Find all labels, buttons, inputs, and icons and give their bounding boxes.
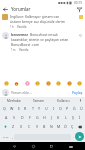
button[interactable]: Emoji 7: [66, 80, 72, 86]
button[interactable]: W: [8, 104, 15, 113]
button[interactable]: Switch keyboard: [67, 143, 74, 150]
button[interactable]: ?123: [1, 132, 10, 141]
staticText: 00:15: [74, 1, 83, 5]
staticText: R: [24, 106, 27, 111]
staticText: İ: [79, 115, 81, 120]
button[interactable]: Comma: [10, 132, 14, 141]
button[interactable]: M: [55, 122, 62, 131]
staticText: M: [57, 124, 61, 129]
staticText: U: [45, 106, 48, 111]
button[interactable]: Yorum ekle...: [11, 90, 71, 95]
button[interactable]: Ö: [62, 122, 69, 131]
staticText: Tamam: [33, 99, 45, 103]
button[interactable]: A: [2, 113, 10, 122]
button[interactable]: Q: [0, 104, 8, 113]
button[interactable]: Emoji 6: [55, 80, 61, 86]
button[interactable]: Like: [78, 33, 83, 38]
button[interactable]: Send: [75, 132, 84, 141]
button[interactable]: Back: [2, 6, 9, 13]
button[interactable]: Emoji 4: [34, 80, 40, 86]
button[interactable]: X: [17, 122, 25, 131]
staticText: O: [59, 106, 62, 111]
button[interactable]: G: [34, 113, 41, 122]
button[interactable]: Emoji 8: [76, 80, 82, 86]
button[interactable]: S: [10, 113, 18, 122]
button[interactable]: I: [50, 104, 57, 113]
button[interactable]: R: [22, 104, 29, 113]
button[interactable]: İ: [76, 113, 83, 122]
staticText: L: [65, 115, 67, 120]
button[interactable]: Period: [71, 132, 75, 141]
staticText: X: [20, 124, 23, 129]
staticText: Q: [3, 106, 6, 111]
button[interactable]: N: [48, 122, 55, 131]
staticText: ,: [12, 134, 13, 139]
button[interactable]: T: [29, 104, 36, 113]
staticText: Kullanıcı: [57, 99, 70, 103]
button[interactable]: benzemez: [0, 29, 85, 52]
button[interactable]: Ç: [69, 122, 76, 131]
staticText: Z: [12, 124, 15, 129]
staticText: benzemez: [11, 32, 29, 37]
staticText: T: [32, 106, 34, 111]
button[interactable]: H: [41, 113, 48, 122]
staticText: Merhaba: [7, 99, 21, 103]
staticText: Bonushoot ensuk: [30, 32, 58, 37]
button[interactable]: Ş: [69, 113, 76, 122]
button[interactable]: U: [43, 104, 50, 113]
staticText: Yanıtla: [19, 48, 29, 52]
staticText: 1h: [10, 25, 14, 29]
staticText: kazandılar, sitenin ve paylaşan ortan: [11, 37, 69, 42]
button[interactable]: K: [55, 113, 62, 122]
staticText: B: [43, 124, 46, 129]
button[interactable]: Shift: [1, 122, 9, 131]
staticText: 1m: [11, 48, 16, 52]
button[interactable]: Home: [30, 143, 37, 150]
button[interactable]: Emoji 3: [24, 80, 30, 86]
button[interactable]: Emoji 2: [13, 80, 19, 86]
button[interactable]: Y: [36, 104, 43, 113]
button[interactable]: L: [62, 113, 69, 122]
button[interactable]: Z: [9, 122, 17, 131]
staticText: V: [36, 124, 39, 129]
button[interactable]: Back: [11, 143, 18, 150]
button[interactable]: C: [25, 122, 33, 131]
staticText: Y: [38, 106, 41, 111]
button[interactable]: Tamam: [26, 97, 51, 104]
staticText: C: [28, 124, 31, 129]
button[interactable]: Kullanıcı: [51, 97, 76, 104]
staticText: E: [18, 106, 20, 111]
button[interactable]: Ğ: [71, 104, 78, 113]
button[interactable]: Voice input: [76, 97, 84, 104]
button[interactable]: Paylaş: [72, 90, 83, 95]
button[interactable]: B: [41, 122, 48, 131]
button[interactable]: Merhaba: [1, 97, 26, 104]
button[interactable]: E: [15, 104, 22, 113]
button[interactable]: Recents: [48, 143, 55, 150]
button[interactable]: D: [18, 113, 26, 122]
staticText: üstüne bereye suz düşünüle derim: [10, 19, 66, 24]
staticText: Paylaş: [72, 90, 83, 95]
button[interactable]: J: [48, 113, 55, 122]
staticText: P: [66, 106, 69, 111]
button[interactable]: Backspace: [76, 122, 84, 131]
button[interactable]: Emoji 5: [45, 80, 51, 86]
button[interactable]: Emoji 1: [3, 80, 9, 86]
button[interactable]: Filter: [76, 6, 83, 13]
staticText: Ş: [72, 115, 74, 120]
button[interactable]: Ingilizce: Kalkmıyor girsem oze: [0, 13, 85, 29]
button[interactable]: P: [64, 104, 71, 113]
staticText: Ğ: [73, 106, 76, 111]
staticText: H: [43, 115, 46, 120]
button[interactable]: O: [57, 104, 64, 113]
button[interactable]: V: [33, 122, 41, 131]
staticText: Ç: [71, 124, 74, 129]
staticText: D: [21, 115, 24, 120]
staticText: J: [51, 115, 52, 120]
button[interactable]: F: [26, 113, 34, 122]
button[interactable]: Ü: [78, 104, 85, 113]
staticText: K: [57, 115, 60, 120]
staticText: S: [13, 115, 15, 120]
staticText: Ü: [80, 106, 83, 111]
